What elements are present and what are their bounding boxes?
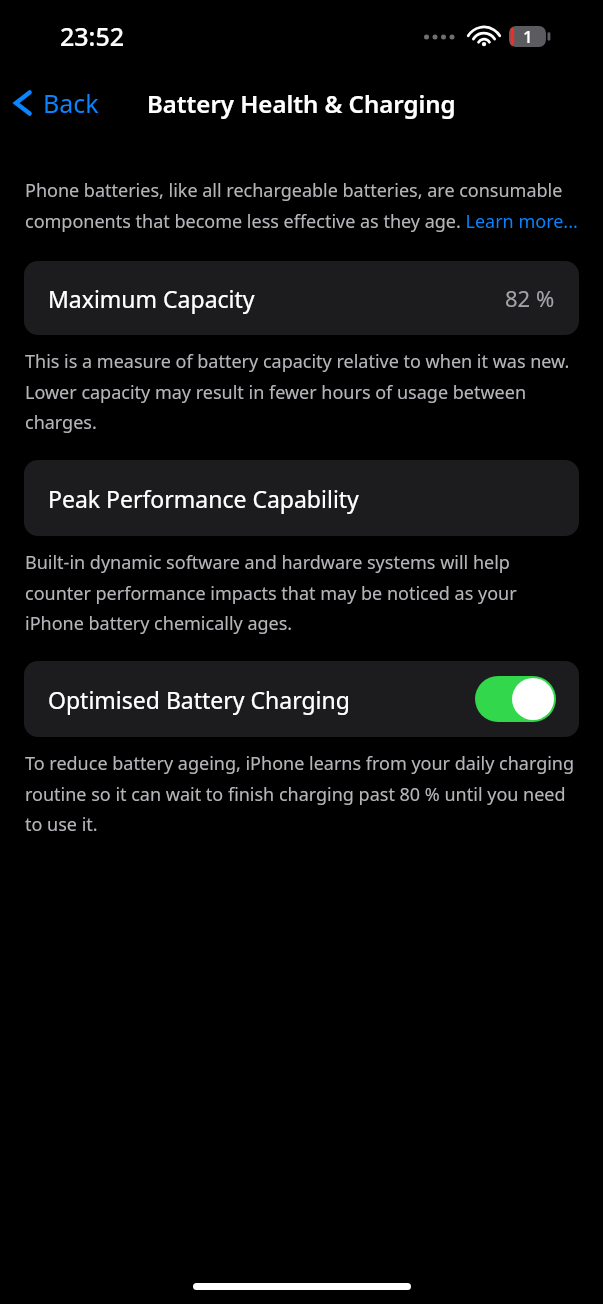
staticText: Back: [43, 86, 99, 120]
button[interactable]: Maximum Capacity: [24, 261, 579, 335]
button[interactable]: Optimised Battery Charging toggle, on: [475, 676, 556, 722]
button[interactable]: Back: [0, 80, 109, 126]
staticText: Phone batteries, like all rechargeable b…: [25, 178, 578, 234]
button[interactable]: Peak Performance Capability: [24, 460, 579, 536]
staticText: To reduce battery ageing, iPhone learns …: [25, 751, 578, 836]
staticText: Optimised Battery Charging: [48, 684, 350, 715]
staticText: This is a measure of battery capacity re…: [25, 349, 578, 434]
button[interactable]: Optimised Battery Charging: [24, 661, 579, 737]
staticText: 82 %: [505, 283, 555, 313]
staticText: Battery Health & Charging: [147, 87, 456, 120]
staticText: Maximum Capacity: [48, 283, 255, 314]
staticText: Peak Performance Capability: [48, 483, 359, 514]
staticText: Built-in dynamic software and hardware s…: [25, 550, 578, 635]
staticText: 23:52: [60, 19, 125, 53]
staticText: 1: [523, 25, 533, 48]
